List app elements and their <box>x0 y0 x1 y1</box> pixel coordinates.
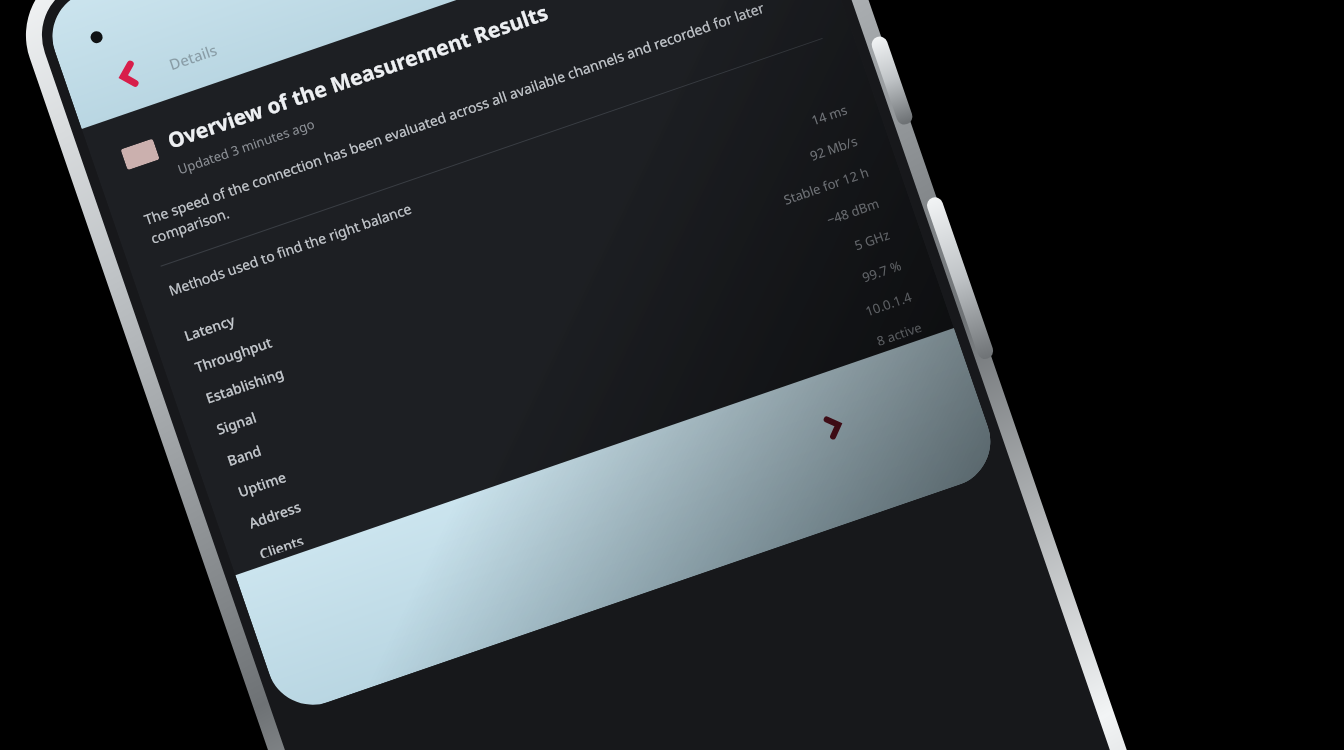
button[interactable]: Throughput <box>190 124 863 383</box>
staticText: Band <box>225 441 264 470</box>
staticText: Throughput <box>192 332 274 376</box>
staticText: 5 GHz <box>852 225 893 254</box>
staticText: −48 dBm <box>824 194 882 229</box>
button[interactable]: Band <box>222 218 895 477</box>
staticText: Details <box>166 39 220 74</box>
staticText: 92 Mb/s <box>807 131 860 165</box>
staticText: Uptime <box>235 467 289 501</box>
staticText: Overview of the Measurement Results <box>164 0 552 156</box>
staticText: Latency <box>182 310 237 345</box>
button[interactable]: Uptime <box>233 249 906 508</box>
staticText: 8 active <box>874 318 923 346</box>
button[interactable]: Next <box>235 328 1003 717</box>
staticText: 10.0.1.4 <box>863 287 914 320</box>
button[interactable]: Establishing <box>201 155 873 414</box>
staticText: Stable for 12 h <box>781 163 871 209</box>
staticText: Address <box>246 497 303 532</box>
button[interactable]: Latency <box>179 93 852 352</box>
button[interactable]: Back <box>93 39 164 110</box>
staticText: Methods used to find the right balance <box>166 198 414 300</box>
staticText: The speed of the connection has been eva… <box>142 0 816 249</box>
staticText: 14 ms <box>809 100 850 129</box>
staticText: Signal <box>214 407 259 439</box>
staticText: Establishing <box>203 363 287 408</box>
button[interactable]: Clients <box>255 311 926 566</box>
staticText: Clients <box>257 531 305 559</box>
staticText: 99.7 % <box>860 256 903 286</box>
staticText: Updated 3 minutes ago <box>175 114 317 178</box>
button[interactable]: Address <box>244 280 916 539</box>
button[interactable]: Signal <box>212 186 884 445</box>
